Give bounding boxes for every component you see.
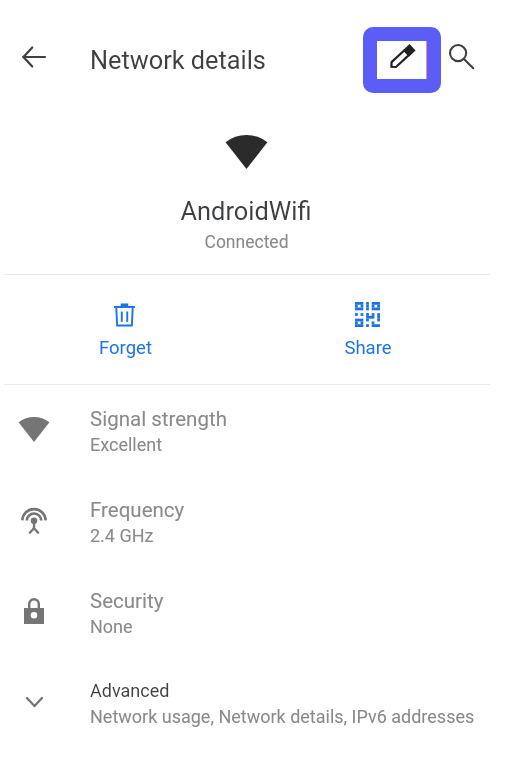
staticText: Network details	[90, 46, 266, 76]
button[interactable]: Security	[0, 567, 492, 658]
staticText: None	[90, 616, 133, 637]
button[interactable]: Forget	[45, 275, 205, 384]
staticText: Share	[344, 337, 392, 359]
staticText: Signal strength	[90, 407, 227, 431]
button[interactable]: Search	[434, 29, 490, 85]
button[interactable]: Advanced	[0, 658, 492, 749]
staticText: AndroidWifi	[180, 196, 312, 226]
staticText: Excellent	[90, 434, 163, 455]
button[interactable]: Frequency	[0, 476, 492, 567]
staticText: Forget	[99, 337, 152, 359]
staticText: Connected	[204, 232, 289, 253]
button[interactable]: Back	[10, 33, 58, 81]
button[interactable]: Share	[287, 275, 447, 384]
staticText: Security	[90, 589, 164, 613]
staticText: Network usage, Network details, IPv6 add…	[90, 706, 475, 727]
button[interactable]: Signal strength	[0, 385, 492, 476]
button[interactable]: Edit	[363, 27, 441, 93]
staticText: Advanced	[90, 680, 170, 701]
staticText: Frequency	[90, 498, 185, 522]
staticText: 2.4 GHz	[90, 525, 154, 546]
